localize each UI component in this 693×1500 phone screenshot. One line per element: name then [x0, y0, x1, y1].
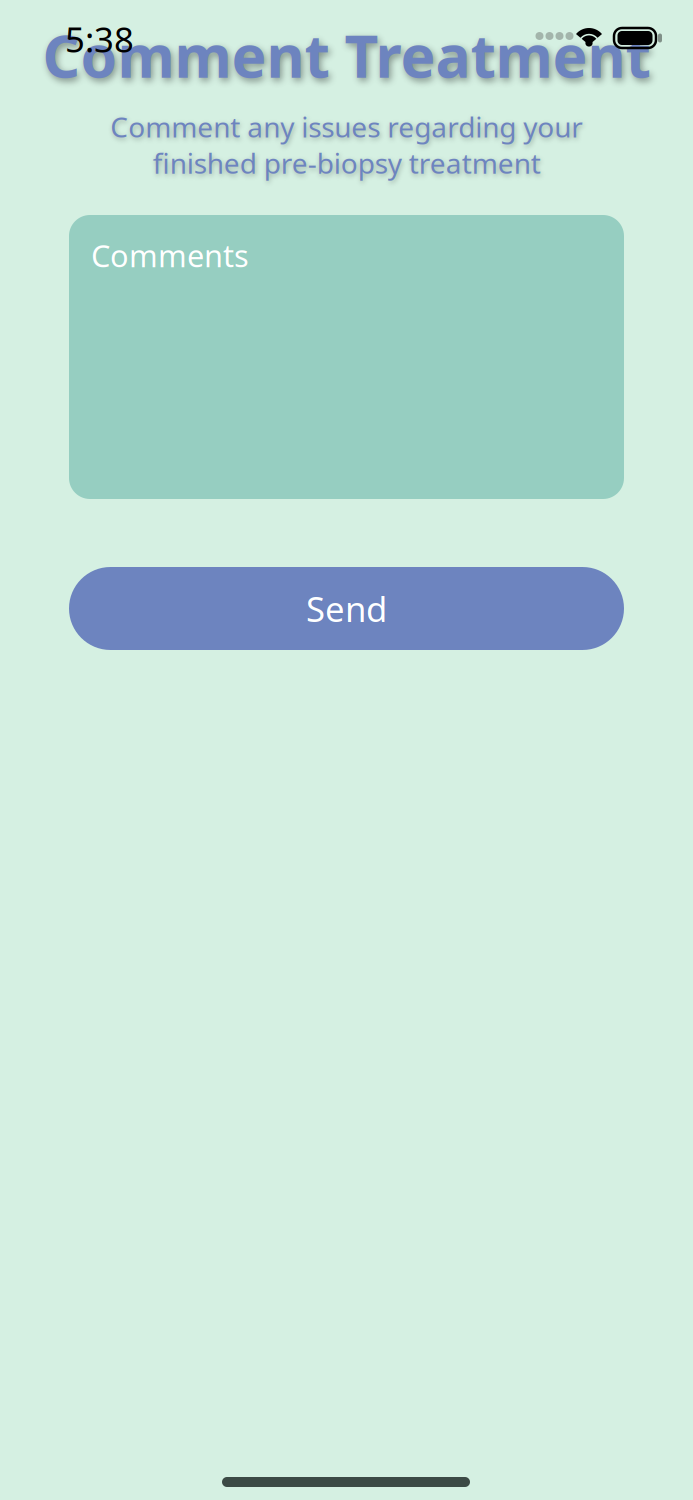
- staticText: Send: [306, 585, 387, 631]
- staticText: Comment Treatment: [42, 16, 650, 94]
- staticText: Comment any issues regarding your finish…: [110, 108, 583, 181]
- staticText: Comments: [91, 235, 249, 276]
- button[interactable]: Send: [69, 567, 624, 650]
- button[interactable]: Comments: [69, 215, 624, 499]
- staticText: 5:38: [65, 16, 134, 62]
